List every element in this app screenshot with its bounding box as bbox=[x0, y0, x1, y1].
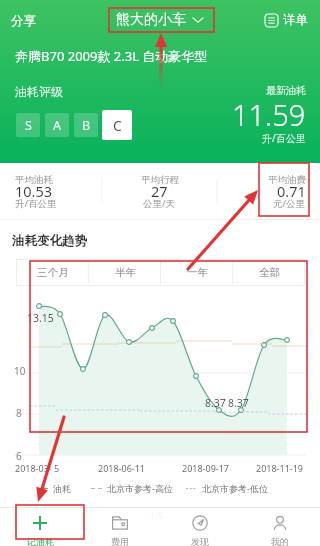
staticText: 平均油耗 bbox=[15, 174, 53, 186]
button[interactable]: 分享 bbox=[4, 8, 43, 34]
button[interactable]: B bbox=[74, 113, 98, 137]
staticText: 发现 bbox=[191, 536, 209, 546]
button[interactable]: 详单 bbox=[259, 8, 314, 32]
staticText: B bbox=[82, 117, 91, 134]
staticText: 最新油耗 bbox=[266, 84, 306, 97]
staticText: A bbox=[53, 117, 61, 134]
staticText: 元/公里 bbox=[273, 197, 306, 210]
staticText: 2018-09-17 bbox=[182, 462, 229, 474]
staticText: 6 bbox=[16, 449, 22, 463]
button[interactable]: 记油耗 bbox=[0, 508, 80, 546]
staticText: S bbox=[25, 117, 32, 134]
button[interactable]: 三个月 bbox=[16, 259, 89, 286]
staticText: 记油耗 bbox=[27, 536, 54, 546]
staticText: 北京市参考-高位 bbox=[107, 482, 173, 494]
button[interactable]: 半年 bbox=[89, 259, 161, 286]
staticText: 三个月 bbox=[37, 266, 69, 279]
staticText: 8.37 bbox=[228, 396, 249, 410]
button[interactable]: 我的 bbox=[240, 508, 320, 546]
staticText: 8.37 bbox=[205, 396, 226, 410]
staticText: 1/5 bbox=[150, 509, 164, 521]
button[interactable]: 平均行程 bbox=[102, 163, 217, 219]
staticText: 10 bbox=[14, 364, 26, 378]
staticText: 分享 bbox=[11, 13, 36, 29]
staticText: 13.15 bbox=[27, 311, 54, 325]
staticText: 油耗变化趋势 bbox=[12, 233, 87, 249]
button[interactable]: 一年 bbox=[161, 259, 233, 286]
button[interactable]: S bbox=[16, 113, 40, 137]
staticText: 奔腾B70 2009款 2.3L 自动豪华型 bbox=[15, 47, 208, 65]
staticText: 2018-11-19 bbox=[256, 462, 303, 474]
staticText: 全部 bbox=[259, 266, 280, 279]
staticText: 油耗评级 bbox=[15, 84, 63, 99]
button[interactable]: 平均油耗 bbox=[0, 163, 102, 219]
staticText: 0.71 bbox=[277, 181, 306, 201]
staticText: 2018-06-11 bbox=[98, 462, 145, 474]
staticText: 平均行程 bbox=[141, 174, 179, 186]
button[interactable]: A bbox=[45, 113, 69, 137]
button[interactable]: 费用 bbox=[80, 508, 160, 546]
staticText: 半年 bbox=[115, 266, 136, 279]
staticText: 北京市参考-低位 bbox=[202, 482, 268, 494]
staticText: 熊大的小车 bbox=[116, 11, 186, 29]
staticText: 详单 bbox=[283, 12, 308, 28]
staticText: 我的 bbox=[271, 536, 289, 546]
staticText: 升/百公里 bbox=[262, 131, 306, 145]
staticText: 一年 bbox=[187, 266, 208, 279]
staticText: 2018-03- 5 bbox=[15, 462, 60, 474]
staticText: 8 bbox=[16, 406, 22, 420]
staticText: 11.59 bbox=[232, 95, 306, 134]
staticText: 油耗 bbox=[53, 483, 71, 494]
staticText: 10.53 bbox=[15, 181, 53, 201]
button[interactable]: 发现 bbox=[160, 508, 240, 546]
staticText: C bbox=[113, 116, 122, 135]
staticText: 费用 bbox=[111, 536, 129, 546]
button[interactable]: C bbox=[102, 110, 132, 140]
staticText: 升/百公里 bbox=[15, 197, 57, 210]
button[interactable]: 平均油费 bbox=[217, 163, 320, 219]
staticText: 平均油费 bbox=[268, 174, 306, 186]
staticText: 公里/天 bbox=[143, 197, 176, 210]
button[interactable]: 全部 bbox=[233, 259, 305, 286]
button[interactable]: 熊大的小车 bbox=[110, 8, 209, 32]
staticText: 27 bbox=[151, 181, 168, 201]
